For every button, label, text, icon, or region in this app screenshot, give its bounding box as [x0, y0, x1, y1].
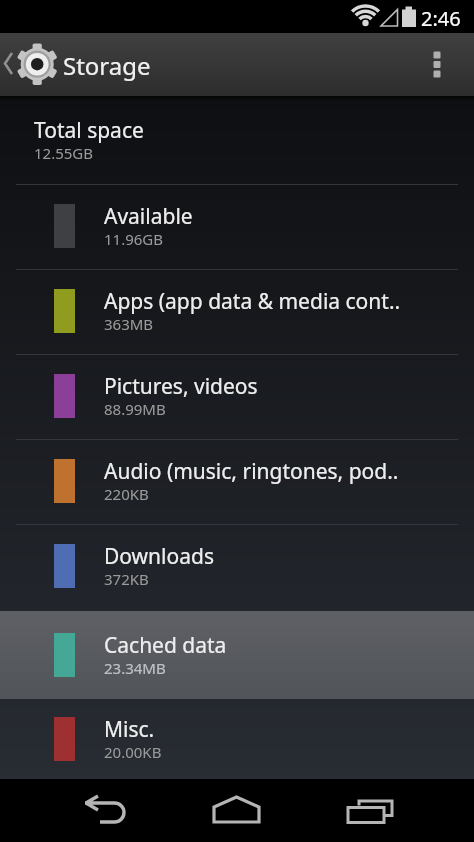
staticText: 220KB — [104, 484, 149, 504]
staticText: Available — [104, 202, 193, 231]
button[interactable]: Misc. — [0, 699, 474, 779]
button[interactable]: Cached data — [0, 611, 474, 699]
button[interactable] — [340, 789, 400, 833]
staticText: 2:46 — [421, 5, 461, 32]
staticText: 11.96GB — [104, 229, 164, 249]
staticText: Downloads — [104, 542, 214, 571]
staticText: Pictures, videos — [104, 372, 258, 401]
button[interactable]: Total space — [0, 96, 474, 184]
staticText: 363MB — [104, 314, 154, 334]
staticText: Storage — [63, 49, 151, 82]
button[interactable]: Pictures, videos — [0, 354, 474, 439]
staticText: 23.34MB — [104, 658, 166, 678]
button[interactable]: Available — [0, 184, 474, 269]
staticText: 88.99MB — [104, 399, 166, 419]
staticText: 372KB — [104, 569, 149, 589]
staticText: 20.00KB — [104, 742, 162, 762]
staticText: Apps (app data & media cont.. — [104, 287, 401, 316]
button[interactable]: Storage — [0, 33, 474, 96]
staticText: Total space — [34, 116, 144, 145]
button[interactable] — [74, 789, 134, 833]
staticText: Audio (music, ringtones, pod.. — [104, 457, 399, 486]
staticText: Cached data — [104, 631, 227, 660]
button[interactable]: Downloads — [0, 524, 474, 609]
button[interactable]: Apps (app data & media cont.. — [0, 269, 474, 354]
button[interactable]: Audio (music, ringtones, pod.. — [0, 439, 474, 524]
staticText: Misc. — [104, 715, 155, 744]
staticText: 12.55GB — [34, 143, 94, 163]
button[interactable] — [207, 789, 267, 833]
